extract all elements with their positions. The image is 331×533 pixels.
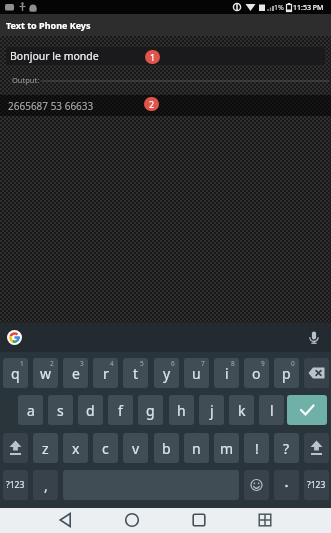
button[interactable]: d <box>78 395 103 425</box>
button[interactable]: s <box>48 395 73 425</box>
staticText: p <box>282 364 291 383</box>
staticText: 1% <box>274 3 284 13</box>
button[interactable]: a <box>18 395 43 425</box>
staticText: , <box>44 476 48 495</box>
button[interactable] <box>166 508 232 533</box>
button[interactable]: , <box>33 470 58 500</box>
staticText: 1 <box>20 359 24 368</box>
staticText: Bonjour le monde <box>10 49 99 63</box>
staticText: d <box>86 401 95 420</box>
staticText: 0 <box>291 359 295 368</box>
staticText: r <box>103 364 109 383</box>
button[interactable]: e <box>63 358 88 388</box>
button[interactable]: u <box>184 358 209 388</box>
staticText: n <box>192 439 201 458</box>
button[interactable]: Bonjour le monde <box>6 47 325 65</box>
button[interactable]: j <box>199 395 224 425</box>
button[interactable]: v <box>123 433 148 463</box>
staticText: 7 <box>201 359 205 368</box>
staticText: i <box>225 364 229 383</box>
staticText: 6 <box>171 359 175 368</box>
staticText: v <box>132 439 140 458</box>
button[interactable]: n <box>184 433 209 463</box>
button[interactable]: f <box>108 395 133 425</box>
staticText: f <box>118 401 123 420</box>
staticText: h <box>177 401 186 420</box>
staticText: c <box>102 439 109 458</box>
staticText: z <box>42 439 49 458</box>
staticText: m <box>220 439 234 458</box>
button[interactable]: b <box>154 433 179 463</box>
staticText: t <box>133 364 139 383</box>
button[interactable] <box>244 470 269 500</box>
staticText: ! <box>255 439 259 458</box>
staticText: 11:53 PM <box>293 3 324 13</box>
staticText: ?123 <box>6 479 25 491</box>
button[interactable]: t <box>123 358 148 388</box>
button[interactable]: w <box>33 358 58 388</box>
button[interactable]: k <box>229 395 254 425</box>
staticText: 5 <box>140 359 144 368</box>
staticText: q <box>11 364 20 383</box>
button[interactable]: Text to Phone Keys <box>0 14 331 36</box>
button[interactable]: ! <box>244 433 269 463</box>
staticText: 4 <box>110 359 114 368</box>
button[interactable]: r <box>93 358 118 388</box>
staticText: s <box>57 401 64 420</box>
button[interactable]: ?123 <box>304 470 329 500</box>
button[interactable]: c <box>93 433 118 463</box>
staticText: b <box>162 439 171 458</box>
button[interactable]: h <box>169 395 194 425</box>
button[interactable]: ?123 <box>3 470 28 500</box>
button[interactable]: z <box>33 433 58 463</box>
button[interactable]: p <box>274 358 299 388</box>
button[interactable]: ? <box>274 433 299 463</box>
staticText: 1 <box>150 51 156 63</box>
staticText: Output: <box>12 75 40 85</box>
staticText: x <box>72 439 80 458</box>
staticText: j <box>210 401 214 420</box>
staticText: 8 <box>231 359 235 368</box>
button[interactable]: y <box>154 358 179 388</box>
button[interactable] <box>99 508 165 533</box>
button[interactable] <box>33 508 99 533</box>
staticText: 2 <box>149 98 155 110</box>
staticText: w <box>40 364 52 383</box>
staticText: g <box>146 401 155 420</box>
staticText: y <box>163 364 171 383</box>
button[interactable] <box>3 433 28 463</box>
button[interactable] <box>232 508 298 533</box>
button[interactable]: m <box>214 433 239 463</box>
staticText: ?123 <box>307 479 326 491</box>
button[interactable]: g <box>138 395 163 425</box>
button[interactable]: x <box>63 433 88 463</box>
staticText: o <box>252 364 261 383</box>
staticText: k <box>238 401 246 420</box>
staticText: a <box>27 401 35 420</box>
button[interactable]: i <box>214 358 239 388</box>
staticText: Text to Phone Keys <box>6 19 91 31</box>
button[interactable] <box>7 330 22 345</box>
button[interactable] <box>303 327 325 349</box>
staticText: 9 <box>261 359 265 368</box>
staticText: 2665687 53 66633 <box>8 99 94 113</box>
button[interactable]: o <box>244 358 269 388</box>
button[interactable]: l <box>259 395 284 425</box>
staticText: 2 <box>50 359 54 368</box>
staticText: 3 <box>80 359 84 368</box>
staticText: e <box>72 364 80 383</box>
button[interactable] <box>304 358 329 388</box>
button[interactable] <box>274 470 299 500</box>
button[interactable]: q <box>3 358 28 388</box>
staticText: ? <box>283 439 290 458</box>
button[interactable] <box>304 433 329 463</box>
button[interactable]: 2665687 53 66633 <box>0 95 331 116</box>
staticText: l <box>270 401 274 420</box>
button[interactable] <box>287 395 327 425</box>
staticText: u <box>192 364 201 383</box>
